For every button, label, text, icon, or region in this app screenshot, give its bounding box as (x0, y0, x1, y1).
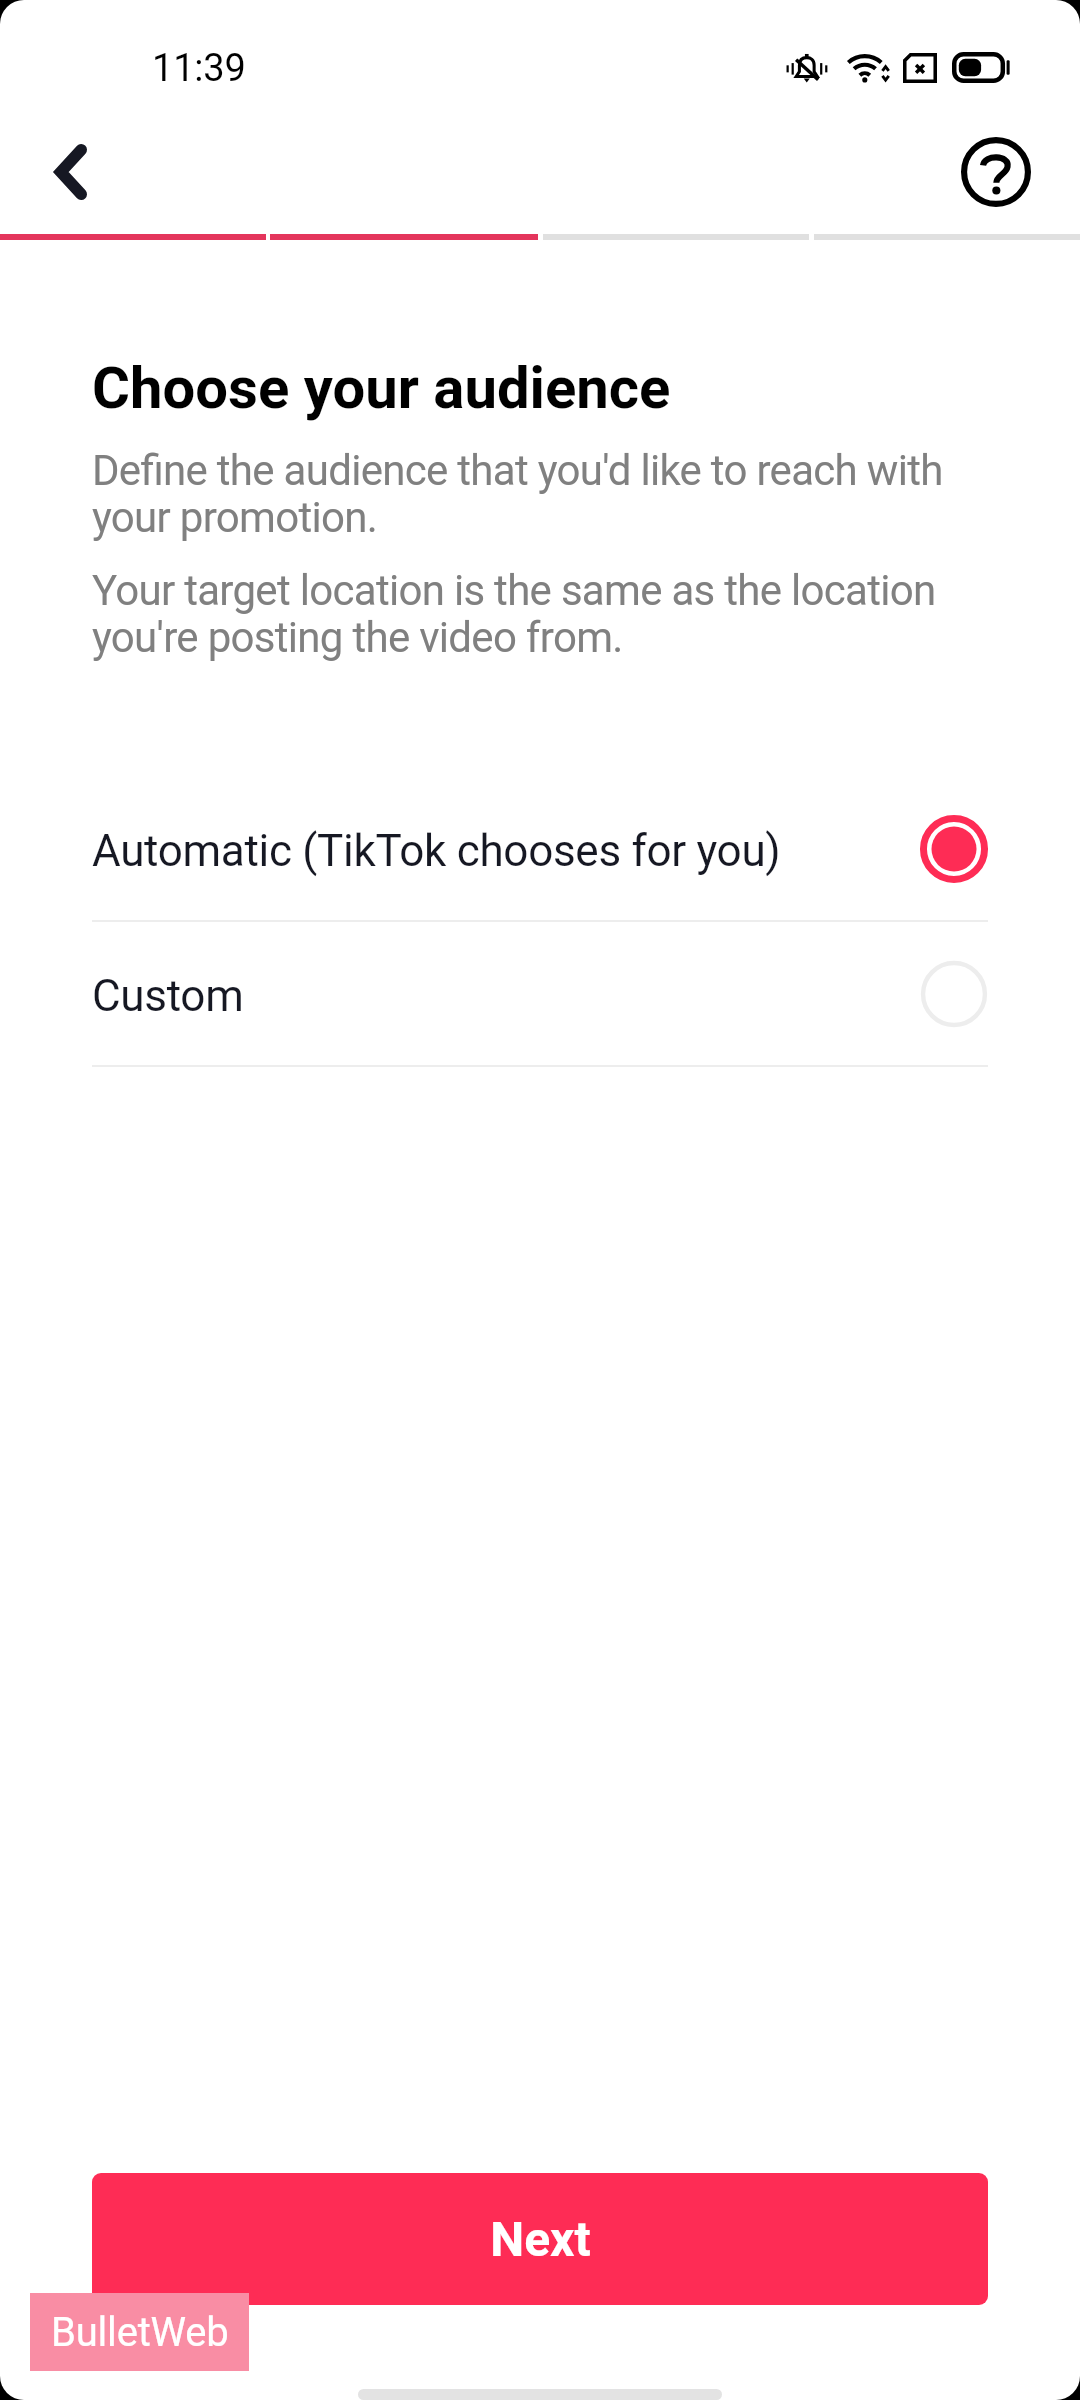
staticText: Automatic (TikTok chooses for you) (92, 826, 920, 876)
button[interactable]: Custom (0, 922, 1080, 1065)
button[interactable]: Help (951, 127, 1041, 217)
staticText: Custom (92, 971, 920, 1021)
staticText: Define the audience that you'd like to r… (92, 448, 992, 542)
button[interactable]: Back (20, 120, 122, 224)
button[interactable]: Automatic (TikTok chooses for you) (0, 777, 1080, 920)
staticText: Next (490, 2211, 591, 2267)
staticText: BulletWeb (51, 2309, 229, 2356)
staticText: Your target location is the same as the … (92, 568, 992, 662)
button[interactable]: Next (92, 2173, 988, 2305)
staticText: Choose your audience (92, 351, 671, 423)
staticText: 11:39 (152, 46, 246, 91)
